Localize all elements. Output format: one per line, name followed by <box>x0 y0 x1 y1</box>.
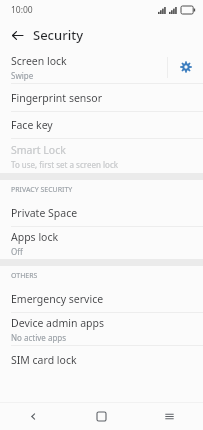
button[interactable]: Screen lock <box>0 51 203 83</box>
button[interactable]: Device admin apps <box>0 313 203 345</box>
button[interactable]: Recents <box>135 403 203 430</box>
staticText: Device admin apps <box>11 316 105 330</box>
button[interactable]: Back <box>0 403 67 430</box>
staticText: Emergency service <box>11 292 104 306</box>
button[interactable]: Private Space <box>0 199 203 226</box>
staticText: Swipe <box>11 70 34 81</box>
staticText: To use, first set a screen lock <box>11 159 118 170</box>
staticText: Private Space <box>11 206 78 220</box>
staticText: Apps lock <box>11 230 59 244</box>
staticText: No active apps <box>11 332 67 343</box>
staticText: SIM card lock <box>11 353 77 367</box>
button[interactable]: Home <box>67 403 135 430</box>
button[interactable]: Fingerprint sensor <box>0 84 203 111</box>
button[interactable]: Apps lock <box>0 227 203 259</box>
button[interactable]: Back <box>5 23 29 47</box>
staticText: 10:00 <box>11 4 33 16</box>
staticText: PRIVACY SECURITY <box>11 185 73 195</box>
staticText: Fingerprint sensor <box>11 91 103 105</box>
button[interactable]: SIM card lock <box>0 346 203 373</box>
button[interactable]: Emergency service <box>0 285 203 312</box>
staticText: Screen lock <box>11 54 67 68</box>
button[interactable]: Smart Lock <box>0 139 203 173</box>
staticText: OTHERS <box>11 271 38 281</box>
staticText: Security <box>33 26 83 44</box>
button[interactable]: Screen lock settings <box>168 51 203 83</box>
staticText: Off <box>11 246 23 257</box>
staticText: Smart Lock <box>11 143 66 157</box>
button[interactable]: Face key <box>0 112 203 138</box>
staticText: Face key <box>11 118 53 132</box>
